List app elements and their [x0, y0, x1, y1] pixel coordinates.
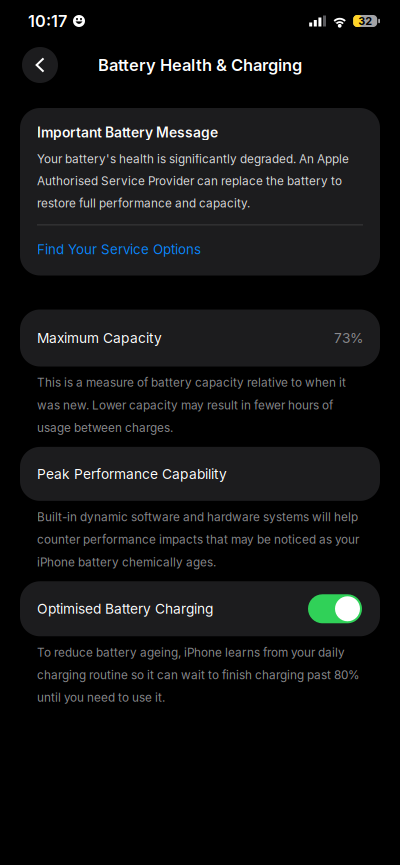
button[interactable]: Back — [22, 47, 58, 83]
staticText: Maximum Capacity — [37, 330, 162, 346]
staticText: 32 — [358, 14, 372, 28]
staticText: Important Battery Message — [37, 124, 218, 141]
staticText: Peak Performance Capability — [37, 466, 227, 482]
staticText: 10:17 — [28, 11, 67, 31]
staticText: Battery Health & Charging — [98, 55, 302, 75]
button[interactable]: Find Your Service Options — [37, 241, 201, 257]
staticText: To reduce battery ageing, iPhone learns … — [37, 645, 360, 705]
staticText: 73% — [334, 330, 363, 346]
button[interactable]: Optimised Battery Charging — [20, 581, 380, 636]
staticText: Built-in dynamic software and hardware s… — [37, 510, 359, 569]
staticText: Your battery's health is significantly d… — [37, 152, 349, 210]
staticText: Find Your Service Options — [37, 241, 201, 257]
staticText: Optimised Battery Charging — [37, 600, 213, 617]
staticText: This is a measure of battery capacity re… — [37, 375, 346, 435]
